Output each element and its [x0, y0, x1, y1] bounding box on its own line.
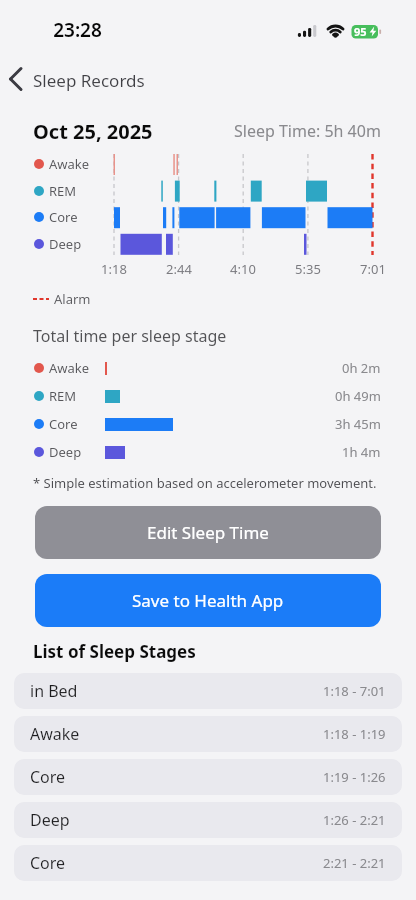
staticText: Sleep Records — [33, 69, 145, 92]
staticText: 1:19 - 1:26 — [323, 768, 386, 786]
staticText: 0h 49m — [335, 387, 381, 405]
staticText: 4:10 — [230, 260, 256, 278]
staticText: Core — [30, 766, 66, 788]
staticText: 1h 4m — [342, 443, 381, 461]
button[interactable]: Awake — [14, 716, 402, 752]
staticText: List of Sleep Stages — [33, 640, 196, 663]
button[interactable]: Core — [14, 759, 402, 795]
staticText: Sleep Time: 5h 40m — [234, 120, 381, 142]
staticText: Alarm — [54, 290, 91, 308]
button[interactable]: Edit Sleep Time — [35, 506, 381, 559]
staticText: 95 — [354, 24, 367, 39]
staticText: Deep — [49, 235, 82, 253]
staticText: in Bed — [30, 680, 78, 702]
staticText: REM — [49, 387, 77, 405]
staticText: 0h 2m — [342, 359, 381, 377]
button[interactable]: in Bed — [14, 673, 402, 709]
staticText: Awake — [30, 723, 80, 745]
staticText: Core — [49, 208, 78, 226]
staticText: 1:26 - 2:21 — [323, 811, 386, 829]
staticText: 1:18 — [101, 260, 127, 278]
button[interactable]: Deep — [14, 802, 402, 838]
staticText: Awake — [49, 359, 90, 377]
button[interactable]: Core — [14, 845, 402, 881]
staticText: 3h 45m — [335, 415, 381, 433]
button[interactable]: Save to Health App — [35, 574, 381, 627]
staticText: Deep — [30, 809, 70, 831]
staticText: Edit Sleep Time — [147, 521, 269, 544]
staticText: 2:21 - 2:21 — [323, 854, 386, 872]
staticText: REM — [49, 182, 77, 200]
staticText: 2:44 — [166, 260, 192, 278]
staticText: 1:18 - 1:19 — [323, 725, 386, 743]
staticText: Core — [49, 415, 78, 433]
staticText: Awake — [49, 155, 90, 173]
button[interactable] — [0, 62, 200, 98]
staticText: 23:28 — [53, 17, 102, 43]
staticText: Core — [30, 852, 66, 874]
staticText: * Simple estimation based on acceleromet… — [33, 474, 377, 492]
staticText: 7:01 — [360, 260, 386, 278]
staticText: Deep — [49, 443, 82, 461]
staticText: Oct 25, 2025 — [33, 118, 153, 145]
staticText: Save to Health App — [132, 589, 284, 612]
staticText: 5:35 — [295, 260, 321, 278]
staticText: Total time per sleep stage — [33, 325, 227, 347]
staticText: 1:18 - 7:01 — [323, 682, 386, 700]
